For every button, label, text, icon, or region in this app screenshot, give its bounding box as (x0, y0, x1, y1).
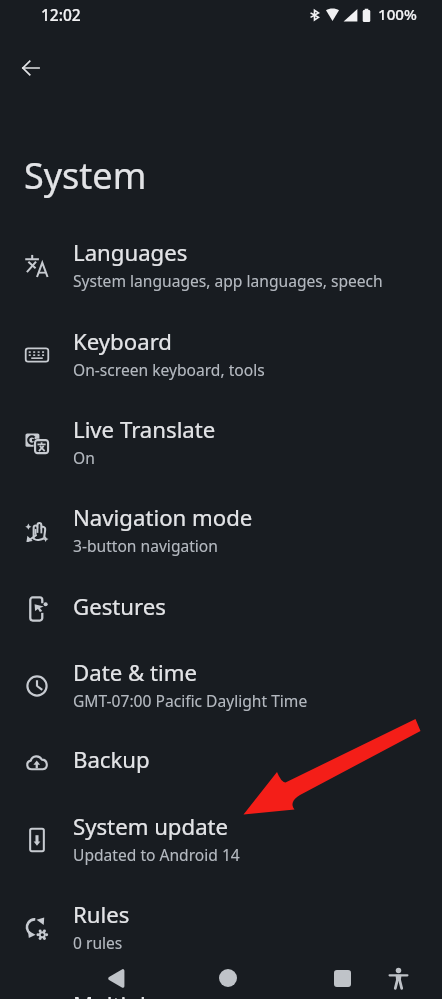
button[interactable]: Rules (0, 883, 442, 971)
staticText: Date & time (73, 657, 197, 687)
staticText: On (73, 447, 95, 468)
button[interactable]: Navigation mode (0, 486, 442, 574)
button[interactable]: Date & time (0, 641, 442, 729)
button[interactable]: System update (0, 795, 442, 883)
staticText: System languages, app languages, speech (73, 270, 383, 291)
button[interactable]: Back (98, 960, 134, 996)
button[interactable]: Multiple users (0, 973, 442, 999)
staticText: Languages (73, 237, 188, 267)
button[interactable]: Languages (0, 221, 442, 309)
button[interactable]: Navigate up (8, 46, 52, 90)
button[interactable]: Keyboard (0, 310, 442, 398)
staticText: 12:02 (41, 4, 81, 25)
staticText: On-screen keyboard, tools (73, 359, 265, 380)
button[interactable]: Backup (0, 729, 442, 795)
button[interactable]: Recent apps (324, 960, 360, 996)
staticText: Navigation mode (73, 502, 253, 532)
staticText: System update (73, 811, 229, 841)
staticText: Backup (73, 744, 150, 774)
staticText: Multiple users (73, 989, 221, 999)
staticText: Keyboard (73, 326, 172, 356)
button[interactable]: Accessibility (380, 960, 416, 996)
staticText: Live Translate (73, 414, 216, 444)
staticText: Updated to Android 14 (73, 844, 240, 865)
button[interactable]: Live Translate (0, 398, 442, 486)
staticText: Rules (73, 899, 130, 929)
staticText: Gestures (73, 591, 166, 621)
button[interactable]: Gestures (0, 575, 442, 641)
staticText: 0 rules (73, 932, 123, 953)
staticText: 100% (378, 4, 417, 25)
staticText: 3-button navigation (73, 535, 218, 556)
button[interactable]: Home (210, 960, 246, 996)
staticText: System (24, 151, 147, 200)
staticText: GMT-07:00 Pacific Daylight Time (73, 690, 308, 711)
